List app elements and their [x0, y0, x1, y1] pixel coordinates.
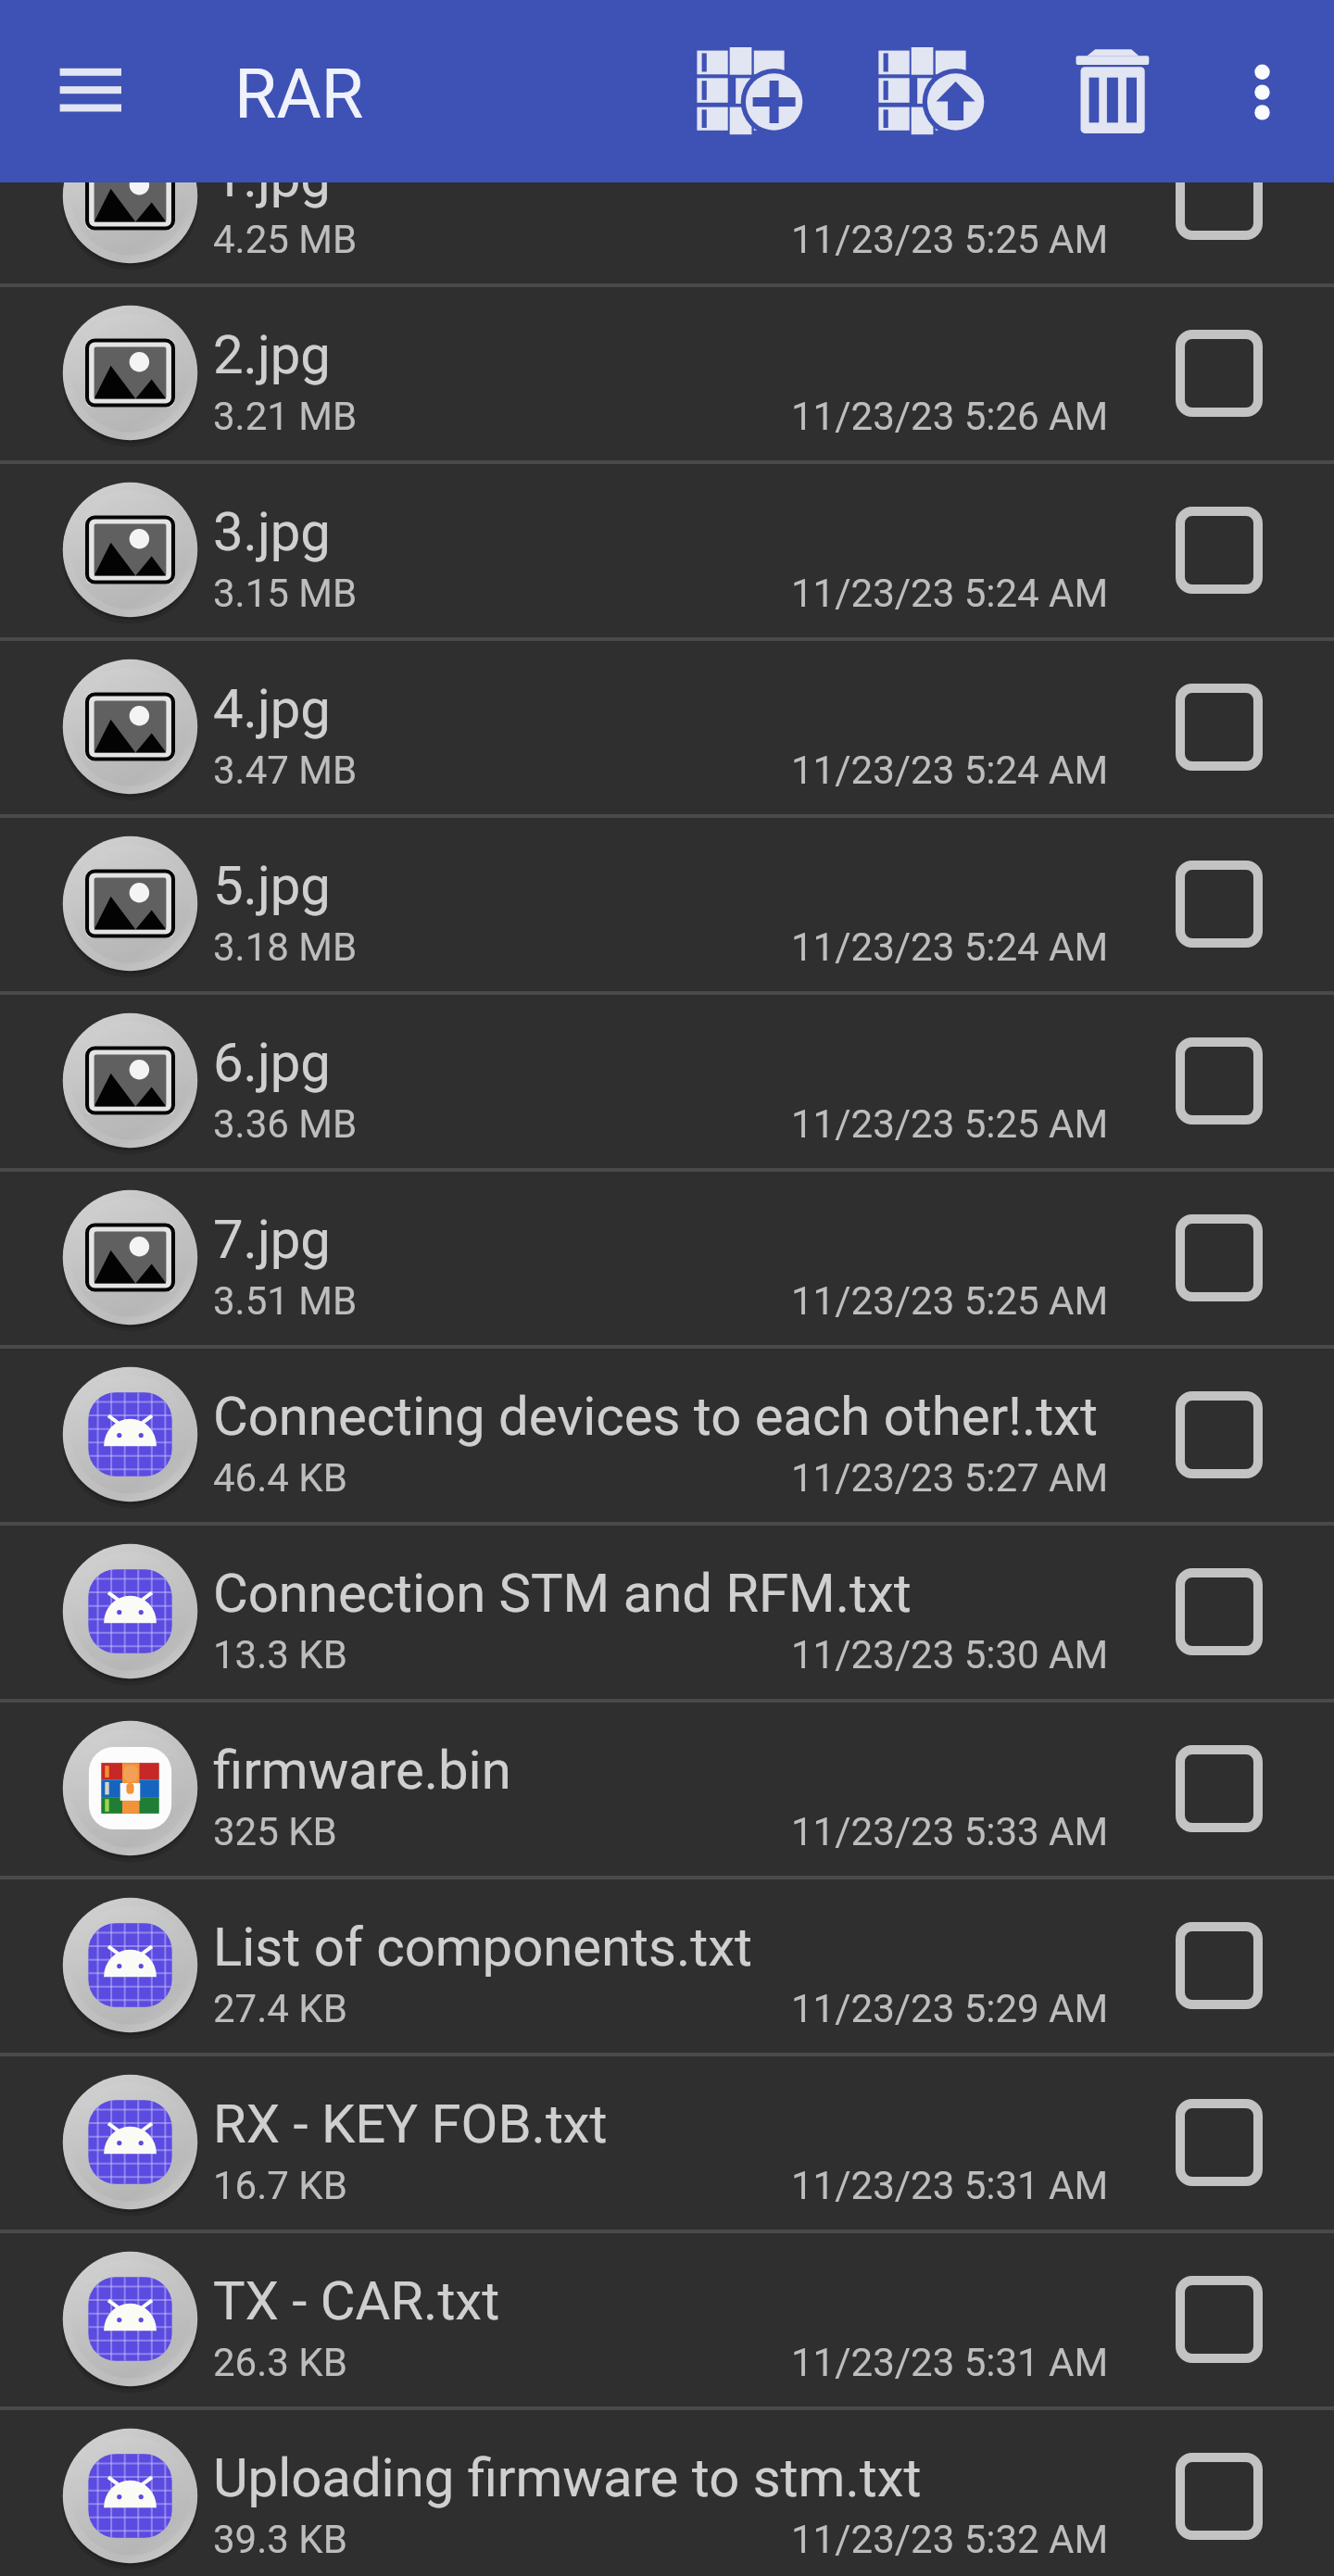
staticText: 16.7 KB	[213, 2163, 347, 2208]
button[interactable]: 1.jpg	[0, 110, 1334, 287]
button[interactable]: 5.jpg	[0, 818, 1334, 995]
button[interactable]: 7.jpg	[0, 1172, 1334, 1349]
staticText: 325 KB	[213, 1809, 337, 1854]
staticText: 2.jpg	[213, 323, 331, 386]
staticText: RX - KEY FOB.txt	[213, 2092, 608, 2155]
staticText: 3.21 MB	[213, 394, 358, 439]
staticText: 39.3 KB	[213, 2517, 347, 2562]
staticText: 3.jpg	[213, 500, 331, 563]
button[interactable]: RX - KEY FOB.txt	[0, 2056, 1334, 2233]
staticText: 11/23/23 5:26 AM	[791, 394, 1109, 439]
button[interactable]: Select 4.jpg	[1147, 641, 1290, 818]
button[interactable]: Select 3.jpg	[1147, 464, 1290, 641]
button[interactable]: Extract files from archive	[849, 26, 1011, 156]
button[interactable]: Select 7.jpg	[1147, 1172, 1290, 1349]
staticText: 5.jpg	[213, 854, 331, 917]
button[interactable]: Select TX - CAR.txt	[1147, 2233, 1290, 2410]
staticText: RAR	[234, 54, 364, 134]
button[interactable]: Select Connection STM and RFM.txt	[1147, 1526, 1290, 1703]
staticText: Connection STM and RFM.txt	[213, 1562, 912, 1625]
button[interactable]: 6.jpg	[0, 995, 1334, 1172]
staticText: 1.jpg	[213, 146, 331, 209]
button[interactable]: Add files to archive	[667, 26, 829, 156]
button[interactable]: 4.jpg	[0, 641, 1334, 818]
staticText: 4.jpg	[213, 677, 331, 740]
staticText: 3.36 MB	[213, 1101, 358, 1147]
button[interactable]: Connection STM and RFM.txt	[0, 1526, 1334, 1703]
staticText: 6.jpg	[213, 1031, 331, 1094]
staticText: 3.15 MB	[213, 571, 358, 616]
staticText: 11/23/23 5:25 AM	[791, 1101, 1109, 1147]
staticText: 11/23/23 5:25 AM	[791, 1278, 1109, 1324]
button[interactable]: 2.jpg	[0, 287, 1334, 464]
staticText: 4.25 MB	[213, 217, 358, 262]
staticText: firmware.bin	[213, 1739, 511, 1802]
staticText: 3.47 MB	[213, 748, 358, 793]
button[interactable]: TX - CAR.txt	[0, 2233, 1334, 2410]
staticText: 11/23/23 5:24 AM	[791, 748, 1109, 793]
button[interactable]: Select 1.jpg	[1147, 110, 1290, 287]
staticText: 11/23/23 5:29 AM	[791, 1986, 1109, 2031]
staticText: List of components.txt	[213, 1916, 752, 1979]
button[interactable]: Select 2.jpg	[1147, 287, 1290, 464]
staticText: 13.3 KB	[213, 1632, 347, 1678]
button[interactable]: Delete	[1042, 26, 1186, 156]
button[interactable]: Connecting devices to each other!.txt	[0, 1349, 1334, 1526]
button[interactable]: 3.jpg	[0, 464, 1334, 641]
staticText: 11/23/23 5:31 AM	[791, 2340, 1109, 2385]
staticText: 11/23/23 5:24 AM	[791, 924, 1109, 970]
staticText: TX - CAR.txt	[213, 2269, 500, 2332]
button[interactable]: Open navigation drawer	[28, 39, 154, 143]
button[interactable]: List of components.txt	[0, 1879, 1334, 2056]
staticText: 3.51 MB	[213, 1278, 358, 1324]
staticText: 7.jpg	[213, 1208, 331, 1271]
staticText: 11/23/23 5:25 AM	[791, 217, 1109, 262]
staticText: Connecting devices to each other!.txt	[213, 1385, 1099, 1448]
button[interactable]: Select List of components.txt	[1147, 1879, 1290, 2056]
staticText: 11/23/23 5:27 AM	[791, 1455, 1109, 1501]
staticText: 11/23/23 5:31 AM	[791, 2163, 1109, 2208]
staticText: 26.3 KB	[213, 2340, 347, 2385]
staticText: 11/23/23 5:30 AM	[791, 1632, 1109, 1678]
staticText: 27.4 KB	[213, 1986, 347, 2031]
button[interactable]: Select RX - KEY FOB.txt	[1147, 2056, 1290, 2233]
staticText: 3.18 MB	[213, 924, 358, 970]
staticText: 11/23/23 5:33 AM	[791, 1809, 1109, 1854]
button[interactable]: Select Uploading firmware to stm.txt	[1147, 2410, 1290, 2576]
button[interactable]: Select 6.jpg	[1147, 995, 1290, 1172]
button[interactable]: Select firmware.bin	[1147, 1703, 1290, 1879]
button[interactable]: firmware.bin	[0, 1703, 1334, 1879]
button[interactable]: Select 5.jpg	[1147, 818, 1290, 995]
button[interactable]: Select Connecting devices to each other!…	[1147, 1349, 1290, 1526]
staticText: 46.4 KB	[213, 1455, 347, 1501]
button[interactable]: More options	[1204, 26, 1320, 156]
staticText: 11/23/23 5:32 AM	[791, 2517, 1109, 2562]
staticText: 11/23/23 5:24 AM	[791, 571, 1109, 616]
staticText: Uploading firmware to stm.txt	[213, 2446, 922, 2509]
button[interactable]: Uploading firmware to stm.txt	[0, 2410, 1334, 2576]
